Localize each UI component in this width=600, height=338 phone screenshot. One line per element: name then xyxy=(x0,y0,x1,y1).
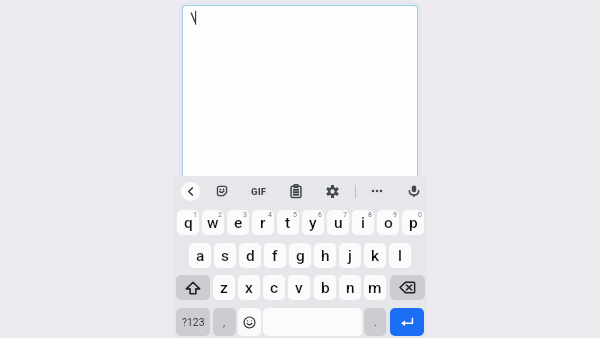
button[interactable]: y xyxy=(302,210,324,235)
staticText: 2 xyxy=(218,211,222,219)
staticText: 7 xyxy=(343,211,347,219)
staticText: d xyxy=(246,247,255,265)
button[interactable]: Shift xyxy=(176,275,210,300)
button[interactable]: r xyxy=(252,210,274,235)
staticText: 1 xyxy=(193,211,197,219)
staticText: n xyxy=(346,279,355,297)
staticText: h xyxy=(321,247,330,265)
button[interactable]: More options xyxy=(369,183,385,199)
staticText: e xyxy=(234,214,243,232)
button[interactable]: ?123 xyxy=(176,308,210,336)
button[interactable]: Clipboard xyxy=(288,183,304,199)
staticText: u xyxy=(334,214,343,232)
staticText: p xyxy=(409,214,418,232)
button[interactable]: d xyxy=(239,243,261,268)
button[interactable]: a xyxy=(189,243,211,268)
button[interactable]: i xyxy=(352,210,374,235)
staticText: k xyxy=(371,247,380,265)
button[interactable]: j xyxy=(339,243,361,268)
button[interactable]: l xyxy=(389,243,411,268)
button[interactable]: . xyxy=(364,308,386,336)
staticText: GIF xyxy=(251,186,267,197)
button[interactable]: w xyxy=(202,210,224,235)
button[interactable]: o xyxy=(377,210,399,235)
staticText: x xyxy=(245,279,253,297)
staticText: f xyxy=(272,247,278,265)
button[interactable]: Enter xyxy=(390,308,424,336)
button[interactable]: Emoji xyxy=(238,308,261,336)
staticText: o xyxy=(384,214,393,232)
staticText: b xyxy=(321,279,330,297)
staticText: . xyxy=(374,316,377,328)
staticText: t xyxy=(285,214,291,232)
button[interactable]: k xyxy=(364,243,386,268)
button[interactable]: t xyxy=(277,210,299,235)
button[interactable]: z xyxy=(213,275,235,300)
staticText: i xyxy=(361,214,365,232)
button[interactable]: Voice input xyxy=(406,183,422,199)
staticText: j xyxy=(348,247,352,265)
button[interactable]: c xyxy=(263,275,285,300)
staticText: 3 xyxy=(243,211,247,219)
button[interactable]: n xyxy=(339,275,361,300)
button[interactable]: m xyxy=(364,275,386,300)
button[interactable]: h xyxy=(314,243,336,268)
staticText: v xyxy=(295,279,303,297)
button[interactable]: Settings xyxy=(325,184,340,199)
staticText: g xyxy=(296,247,305,265)
button[interactable]: p xyxy=(402,210,424,235)
staticText: m xyxy=(368,279,382,297)
staticText: q xyxy=(184,214,193,232)
button[interactable]: Stickers xyxy=(214,183,230,199)
staticText: l xyxy=(398,247,402,265)
staticText: 8 xyxy=(368,211,372,219)
button[interactable]: s xyxy=(214,243,236,268)
button[interactable]: q xyxy=(177,210,199,235)
staticText: w xyxy=(207,214,219,232)
button[interactable] xyxy=(182,5,418,180)
staticText: 9 xyxy=(393,211,397,219)
staticText: 0 xyxy=(418,211,422,219)
button[interactable]: v xyxy=(288,275,310,300)
button[interactable]: b xyxy=(314,275,336,300)
staticText: , xyxy=(223,316,226,328)
staticText: 6 xyxy=(318,211,322,219)
button[interactable]: f xyxy=(264,243,286,268)
button[interactable]: Back xyxy=(181,182,200,201)
staticText: z xyxy=(220,279,228,297)
button[interactable]: g xyxy=(289,243,311,268)
button[interactable]: , xyxy=(213,308,236,336)
staticText: s xyxy=(221,247,229,265)
staticText: ?123 xyxy=(182,316,205,328)
button[interactable]: GIF xyxy=(248,184,270,198)
staticText: 5 xyxy=(293,211,297,219)
staticText: a xyxy=(196,247,205,265)
button[interactable]: Backspace xyxy=(390,275,425,300)
button[interactable]: u xyxy=(327,210,349,235)
staticText: r xyxy=(260,214,266,232)
staticText: 4 xyxy=(268,211,272,219)
staticText: c xyxy=(270,279,279,297)
staticText: y xyxy=(309,214,317,232)
button[interactable]: x xyxy=(238,275,260,300)
button[interactable]: e xyxy=(227,210,249,235)
